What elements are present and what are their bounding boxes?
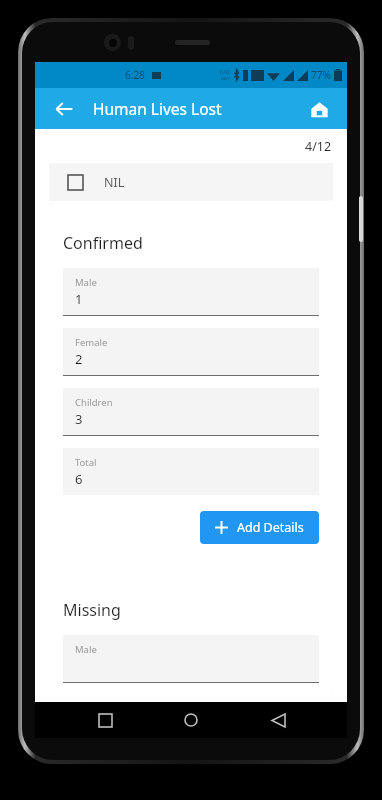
staticText: 4/12 <box>305 138 332 155</box>
staticText: Male <box>75 643 97 656</box>
button[interactable]: Male <box>63 635 319 682</box>
staticText: Missing <box>63 599 121 621</box>
button[interactable]: Back <box>261 703 295 737</box>
staticText: Total <box>75 456 97 469</box>
staticText: Children <box>75 396 113 409</box>
staticText: 77% <box>311 68 331 82</box>
staticText: 2 <box>75 350 83 368</box>
staticText: Confirmed <box>63 232 143 254</box>
staticText: 1 <box>75 290 83 308</box>
button[interactable]: Home <box>174 703 208 737</box>
button[interactable]: Back <box>45 90 83 128</box>
button[interactable]: Female <box>63 328 319 375</box>
button[interactable]: Total <box>63 448 319 495</box>
staticText: Human Lives Lost <box>93 98 222 119</box>
button[interactable]: Home <box>301 91 337 127</box>
button[interactable]: Add Details <box>200 511 319 544</box>
staticText: NIL <box>104 174 125 191</box>
button[interactable]: Children <box>63 388 319 435</box>
staticText: KB/S <box>221 76 230 81</box>
staticText: 0.02 <box>220 69 230 76</box>
staticText: Female <box>75 336 108 349</box>
button[interactable]: Male <box>63 268 319 315</box>
button[interactable]: Recents <box>88 703 122 737</box>
staticText: 6 <box>75 470 83 488</box>
button[interactable]: NIL <box>49 163 333 201</box>
staticText: 3 <box>75 410 83 428</box>
staticText: Male <box>75 276 97 289</box>
staticText: 6:28 <box>125 68 145 82</box>
staticText: Add Details <box>237 519 304 536</box>
